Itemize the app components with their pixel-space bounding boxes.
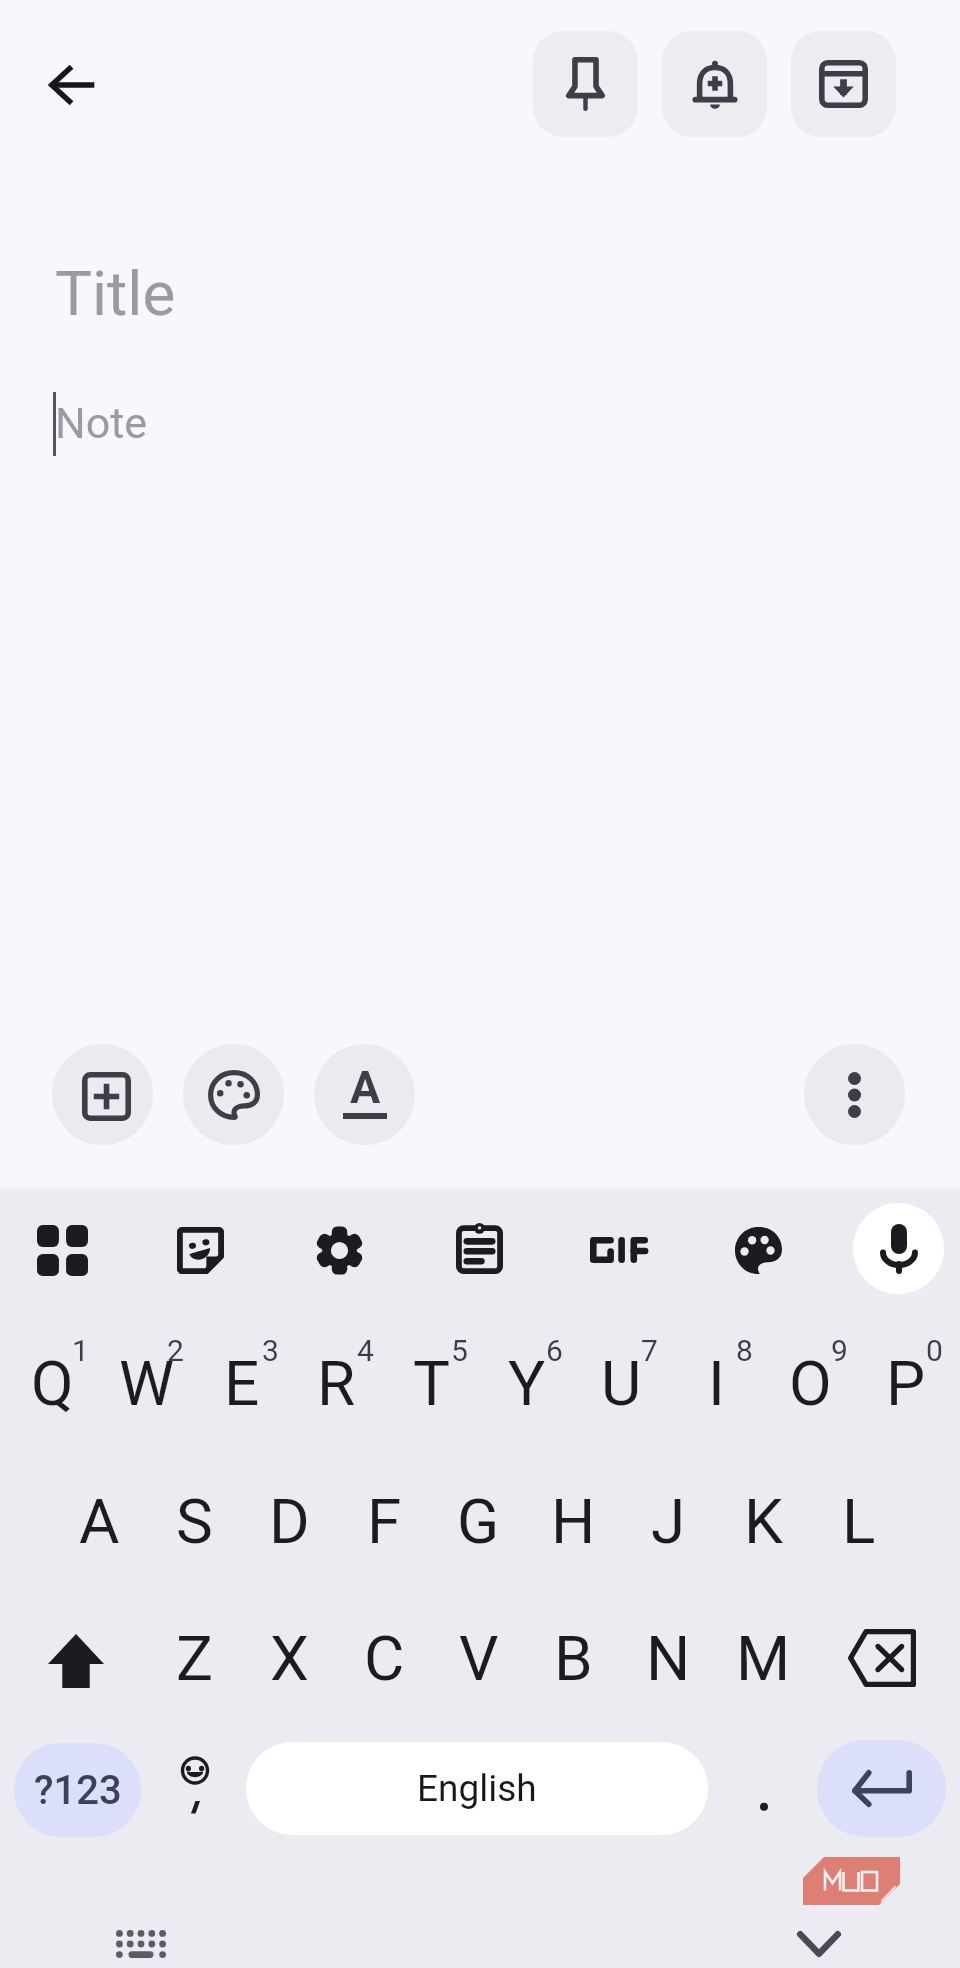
button[interactable]: S <box>147 1459 242 1583</box>
button[interactable]: W <box>99 1321 194 1445</box>
button[interactable]: Apps <box>14 1202 110 1298</box>
button[interactable]: D <box>242 1459 337 1583</box>
staticText: 7 <box>641 1333 658 1367</box>
staticText: 9 <box>831 1333 848 1367</box>
button[interactable]: Switch keyboard <box>101 1904 181 1968</box>
button[interactable]: Clipboard <box>431 1200 527 1296</box>
staticText: E <box>224 1347 260 1420</box>
button[interactable]: Keyboard settings <box>291 1202 387 1298</box>
staticText: I <box>708 1347 725 1420</box>
button[interactable]: Q <box>5 1321 100 1445</box>
button[interactable]: V <box>431 1596 526 1720</box>
staticText: 2 <box>167 1333 184 1367</box>
staticText: English <box>417 1767 537 1810</box>
staticText: G <box>457 1485 500 1558</box>
button[interactable]: Z <box>147 1596 242 1720</box>
button[interactable]: O <box>763 1321 858 1445</box>
staticText: W <box>119 1347 175 1420</box>
staticText: A <box>350 1061 381 1113</box>
staticText: Z <box>176 1622 214 1695</box>
button[interactable]: Add attachment <box>52 1044 153 1145</box>
button[interactable]: Hide keyboard <box>779 1904 859 1968</box>
button[interactable]: C <box>337 1596 432 1720</box>
button[interactable]: Voice input <box>853 1203 944 1294</box>
staticText: J <box>651 1485 686 1558</box>
button[interactable]: Back <box>28 40 118 130</box>
staticText: Y <box>508 1347 546 1420</box>
button[interactable]: Formatting <box>314 1044 415 1145</box>
button[interactable]: Stickers <box>152 1202 248 1298</box>
button[interactable]: P <box>858 1321 953 1445</box>
button[interactable]: Pin note <box>533 31 638 137</box>
staticText: 8 <box>736 1333 753 1367</box>
button[interactable]: English <box>246 1742 708 1835</box>
button[interactable]: Emoji <box>151 1738 239 1832</box>
staticText: H <box>551 1485 596 1558</box>
staticText: Q <box>31 1347 74 1420</box>
staticText: O <box>789 1347 832 1420</box>
button[interactable]: Background options <box>183 1044 284 1145</box>
staticText: Title <box>55 257 176 330</box>
button[interactable]: Title <box>48 245 908 341</box>
button[interactable]: L <box>811 1459 906 1583</box>
button[interactable]: Backspace <box>810 1603 954 1713</box>
staticText: X <box>270 1622 309 1695</box>
button[interactable]: Note <box>48 380 908 466</box>
button[interactable]: K <box>716 1459 811 1583</box>
staticText: F <box>367 1485 402 1558</box>
button[interactable]: Add reminder <box>662 31 767 137</box>
staticText: T <box>413 1347 450 1420</box>
staticText: 6 <box>546 1333 563 1367</box>
button[interactable]: X <box>242 1596 337 1720</box>
button[interactable]: Y <box>479 1321 574 1445</box>
staticText: V <box>459 1622 499 1695</box>
button[interactable]: E <box>194 1321 289 1445</box>
button[interactable]: N <box>621 1596 716 1720</box>
button[interactable]: Themes <box>710 1202 806 1298</box>
staticText: S <box>176 1485 213 1558</box>
staticText: 0 <box>926 1333 943 1367</box>
button[interactable]: More options <box>804 1044 905 1145</box>
staticText: N <box>646 1622 691 1695</box>
staticText: 3 <box>262 1333 279 1367</box>
button[interactable]: M <box>716 1596 811 1720</box>
button[interactable]: R <box>289 1321 384 1445</box>
button[interactable]: G <box>431 1459 526 1583</box>
staticText: K <box>744 1485 783 1558</box>
button[interactable]: I <box>669 1321 764 1445</box>
staticText: 1 <box>72 1333 89 1367</box>
staticText: L <box>842 1485 876 1558</box>
staticText: ?123 <box>34 1767 122 1814</box>
button[interactable]: ?123 <box>14 1743 141 1837</box>
staticText: 5 <box>451 1333 468 1367</box>
staticText: M <box>736 1622 791 1695</box>
button[interactable]: Archive <box>791 31 896 137</box>
button[interactable]: Enter <box>817 1740 946 1837</box>
button[interactable]: Period <box>716 1743 812 1837</box>
button[interactable]: J <box>621 1459 716 1583</box>
button[interactable]: H <box>526 1459 621 1583</box>
staticText: P <box>886 1347 926 1420</box>
button[interactable]: GIF <box>571 1202 667 1298</box>
button[interactable]: F <box>337 1459 432 1583</box>
staticText: 4 <box>357 1333 374 1367</box>
staticText: R <box>317 1347 356 1420</box>
staticText: Note <box>55 398 148 448</box>
button[interactable]: U <box>574 1321 669 1445</box>
staticText: U <box>601 1347 642 1420</box>
button[interactable]: B <box>526 1596 621 1720</box>
staticText: C <box>364 1622 405 1695</box>
staticText: A <box>79 1485 120 1558</box>
staticText: B <box>554 1622 593 1695</box>
button[interactable]: A <box>52 1459 147 1583</box>
staticText: D <box>269 1485 310 1558</box>
button[interactable]: T <box>384 1321 479 1445</box>
button[interactable]: Shift <box>4 1606 148 1716</box>
